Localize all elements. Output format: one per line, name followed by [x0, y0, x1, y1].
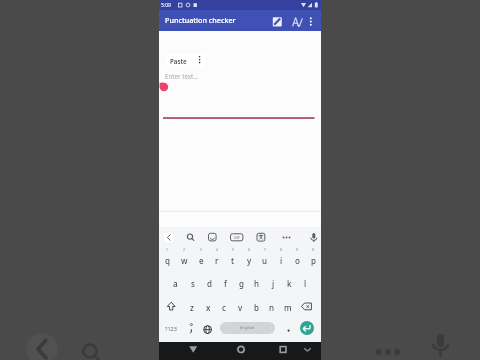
staticText: Enter text... — [165, 72, 199, 80]
staticText: 6 — [248, 247, 251, 252]
button[interactable]: n — [264, 297, 280, 317]
staticText: Paste — [170, 57, 187, 65]
staticText: 9 — [296, 247, 299, 252]
button[interactable]: d — [201, 273, 217, 293]
staticText: 0 — [312, 247, 315, 252]
button[interactable]: ?123 — [159, 322, 183, 335]
button[interactable]: g — [233, 273, 249, 293]
button[interactable]: y — [241, 250, 257, 270]
button[interactable]: t — [225, 250, 241, 270]
staticText: r — [215, 255, 219, 266]
button[interactable]: u — [257, 250, 273, 270]
staticText: GIF — [234, 235, 240, 240]
button[interactable]: x — [200, 297, 216, 317]
button[interactable]: q — [159, 250, 176, 270]
button[interactable]: r — [209, 250, 225, 270]
staticText: c — [222, 302, 226, 313]
staticText: 7 — [264, 247, 267, 252]
staticText: g — [239, 278, 244, 289]
button[interactable]: h — [249, 273, 265, 293]
staticText: t — [231, 255, 235, 266]
staticText: n — [269, 302, 275, 313]
staticText: English — [240, 325, 255, 331]
button[interactable]: a — [167, 273, 184, 293]
staticText: k — [287, 278, 292, 289]
staticText: f — [224, 278, 227, 289]
staticText: o — [295, 255, 300, 266]
staticText: z — [190, 302, 194, 313]
staticText: e — [199, 255, 204, 266]
button[interactable]: s — [184, 273, 201, 293]
staticText: y — [247, 255, 252, 266]
button[interactable]: v — [232, 297, 248, 317]
button[interactable]: i — [273, 250, 289, 270]
staticText: d — [207, 278, 212, 289]
button[interactable]: Paste — [166, 54, 206, 67]
button[interactable]: c — [216, 297, 232, 317]
button[interactable] — [300, 321, 314, 335]
staticText: j — [272, 278, 275, 289]
staticText: 1 — [166, 247, 169, 252]
button[interactable] — [306, 14, 316, 28]
button[interactable]: p — [305, 250, 321, 270]
staticText: x — [206, 302, 211, 313]
staticText: w — [181, 255, 188, 266]
staticText: i — [280, 255, 283, 266]
staticText: 3 — [200, 247, 203, 252]
staticText: u — [262, 255, 268, 266]
button[interactable] — [275, 343, 291, 359]
button[interactable]: e — [193, 250, 209, 270]
staticText: 5:09 — [161, 2, 171, 9]
button[interactable]: j — [265, 273, 281, 293]
button[interactable] — [233, 343, 249, 359]
staticText: 2 — [183, 247, 186, 252]
button[interactable]: b — [248, 297, 264, 317]
staticText: v — [238, 302, 243, 313]
staticText: ?123 — [165, 325, 177, 332]
staticText: l — [304, 278, 307, 289]
button[interactable]: l — [297, 273, 313, 293]
staticText: 8 — [280, 247, 283, 252]
staticText: a — [173, 278, 178, 289]
button[interactable]: f — [217, 273, 233, 293]
staticText: s — [191, 278, 195, 289]
button[interactable]: o — [289, 250, 305, 270]
staticText: h — [254, 278, 260, 289]
staticText: p — [311, 255, 316, 266]
button[interactable]: m — [280, 297, 296, 317]
button[interactable]: z — [183, 297, 200, 317]
staticText: Punctuation checker — [165, 15, 236, 25]
staticText: m — [284, 302, 292, 313]
staticText: q — [165, 255, 170, 266]
button[interactable]: w — [176, 250, 193, 270]
button[interactable]: k — [281, 273, 297, 293]
staticText: 4 — [216, 247, 219, 252]
button[interactable]: English — [220, 322, 275, 334]
staticText: 5 — [232, 247, 235, 252]
button[interactable] — [289, 14, 303, 28]
staticText: b — [254, 302, 259, 313]
button[interactable] — [185, 343, 201, 359]
button[interactable] — [270, 14, 284, 28]
